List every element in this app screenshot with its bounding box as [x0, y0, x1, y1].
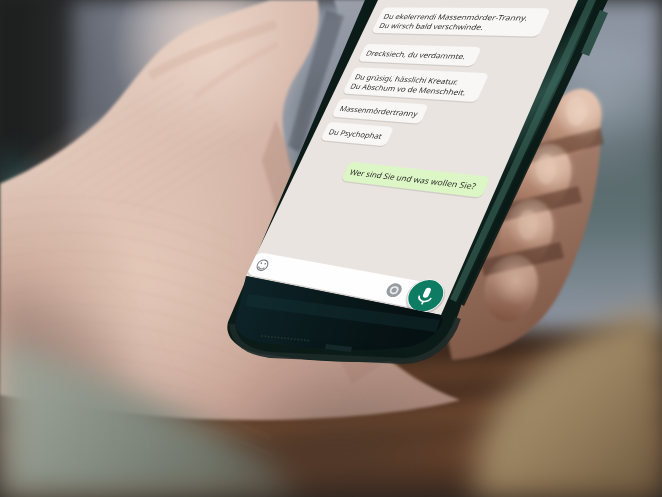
other: WhatsApp chat open on a phone held in a … — [0, 0, 662, 497]
button[interactable]: Record voice message — [404, 278, 448, 322]
button[interactable]: Type a message — [246, 250, 416, 296]
